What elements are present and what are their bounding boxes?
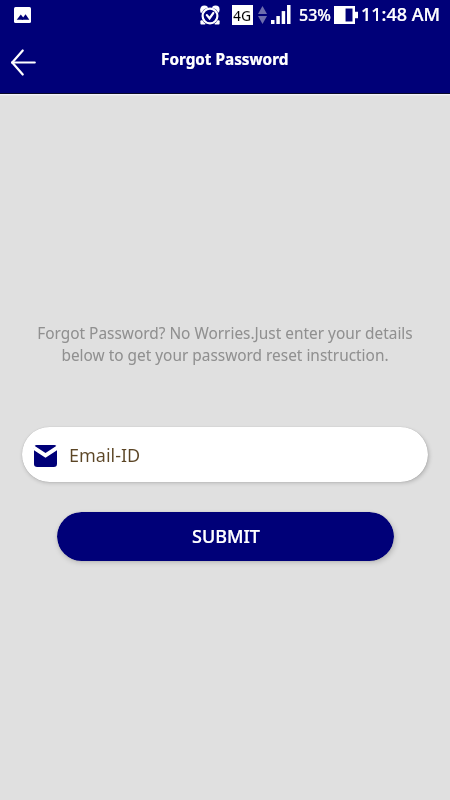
button[interactable]: Back bbox=[1, 40, 45, 84]
staticText: Forgot Password bbox=[161, 49, 289, 70]
button[interactable]: Email-ID bbox=[22, 427, 428, 482]
staticText: 4G bbox=[233, 6, 252, 25]
staticText: Forgot Password? No Worries.Just enter y… bbox=[16, 323, 434, 366]
staticText: 53% bbox=[299, 4, 331, 26]
button[interactable]: SUBMIT bbox=[57, 512, 394, 561]
staticText: Email-ID bbox=[69, 443, 141, 468]
staticText: 11:48 AM bbox=[361, 2, 441, 27]
staticText: SUBMIT bbox=[192, 524, 260, 549]
